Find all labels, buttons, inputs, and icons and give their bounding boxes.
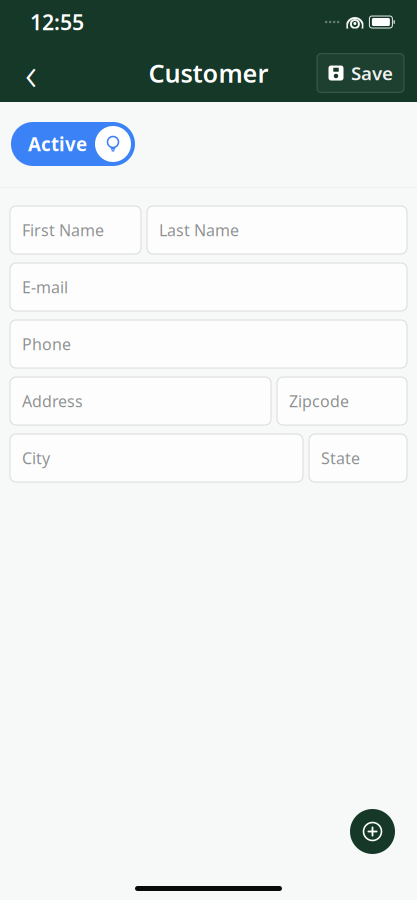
staticText: Phone (22, 333, 71, 355)
staticText: City (22, 447, 50, 469)
staticText: Active (28, 132, 87, 156)
staticText: First Name (22, 219, 104, 241)
button[interactable]: Add product (350, 809, 395, 854)
staticText: Last Name (159, 219, 239, 241)
button[interactable]: Active (11, 122, 135, 166)
staticText: State (321, 447, 360, 469)
button[interactable]: Address (10, 377, 271, 425)
staticText: Save (351, 61, 393, 85)
button[interactable]: Last Name (147, 206, 407, 254)
staticText: Address (22, 390, 83, 412)
button[interactable]: City (10, 434, 303, 482)
button[interactable]: State (309, 434, 407, 482)
button[interactable]: First Name (10, 206, 141, 254)
button[interactable]: Save (317, 54, 404, 92)
staticText: 12:55 (30, 8, 84, 36)
button[interactable]: Phone (10, 320, 407, 368)
button[interactable]: Zipcode (277, 377, 407, 425)
button[interactable]: E-mail (10, 263, 407, 311)
staticText: Customer (148, 56, 268, 90)
button[interactable]: Back (9, 51, 53, 95)
staticText: ‹ (25, 43, 37, 103)
staticText: E-mail (22, 276, 68, 298)
staticText: Zipcode (289, 390, 349, 412)
